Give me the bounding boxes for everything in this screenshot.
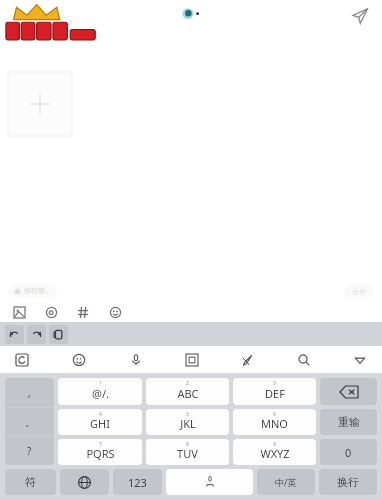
button[interactable]: Space xyxy=(166,469,253,495)
button[interactable]: Undo xyxy=(5,325,24,344)
staticText: 中/英 xyxy=(275,476,297,488)
staticText: , xyxy=(28,386,31,400)
button[interactable]: 1 xyxy=(58,378,142,405)
staticText: 重输 xyxy=(338,415,360,429)
staticText: 5 xyxy=(186,411,189,418)
button[interactable]: Handwriting xyxy=(236,348,260,372)
staticText: GHI xyxy=(90,416,110,431)
staticText: 3 xyxy=(273,380,276,387)
button[interactable]: 换行 xyxy=(319,469,377,495)
staticText: 公开 xyxy=(352,287,366,296)
button[interactable]: 6 xyxy=(233,409,316,435)
staticText: DEF xyxy=(265,386,285,401)
button[interactable]: 公开 xyxy=(344,284,374,299)
staticText: 0 xyxy=(345,445,352,460)
staticText: 123 xyxy=(128,475,147,490)
button[interactable]: Add photo xyxy=(8,72,72,136)
button[interactable]: ? xyxy=(5,437,54,465)
button[interactable]: Emoji xyxy=(67,348,91,372)
button[interactable]: 7 xyxy=(58,439,142,465)
staticText: JKL xyxy=(180,416,196,431)
button[interactable]: Voice input xyxy=(124,348,148,372)
button[interactable]: Search xyxy=(292,348,316,372)
button[interactable]: Send xyxy=(348,4,372,28)
staticText: 9 xyxy=(273,441,276,448)
button[interactable]: Collapse xyxy=(348,348,372,372)
staticText: 。 xyxy=(25,416,35,429)
button[interactable]: 8 xyxy=(146,439,229,465)
button[interactable]: 你在哪… xyxy=(8,284,57,298)
button[interactable]: Insert image xyxy=(10,303,28,321)
button[interactable]: Keyboard layout xyxy=(180,348,204,372)
staticText: MNO xyxy=(261,416,288,431)
button[interactable]: 中/英 xyxy=(257,469,315,495)
staticText: 换行 xyxy=(337,475,359,489)
button[interactable]: Topic xyxy=(74,303,92,321)
staticText: 7 xyxy=(99,441,102,448)
button[interactable]: 重输 xyxy=(320,409,377,435)
button[interactable]: 123 xyxy=(113,469,162,495)
button[interactable]: 0 xyxy=(320,439,377,465)
staticText: TUV xyxy=(177,446,198,461)
staticText: 符 xyxy=(25,475,36,489)
button[interactable]: Redo xyxy=(27,325,46,344)
button[interactable]: 4 xyxy=(58,409,142,435)
button[interactable]: Backspace xyxy=(320,378,377,405)
button[interactable]: 。 xyxy=(5,408,54,436)
button[interactable]: Mention xyxy=(42,303,60,321)
staticText: ABC xyxy=(177,386,199,401)
staticText: 2 xyxy=(186,380,189,387)
staticText: WXYZ xyxy=(260,446,290,461)
staticText: 你在哪… xyxy=(24,286,51,296)
button[interactable]: 2 xyxy=(146,378,229,405)
button[interactable]: 符 xyxy=(5,469,56,495)
button[interactable]: 9 xyxy=(233,439,316,465)
button[interactable]: , xyxy=(5,378,54,407)
staticText: @/. xyxy=(92,386,109,401)
button[interactable]: 5 xyxy=(146,409,229,435)
staticText: 4 xyxy=(99,411,102,418)
staticText: 6 xyxy=(273,411,276,418)
staticText: 1 xyxy=(99,380,102,387)
button[interactable]: Paste xyxy=(49,325,68,344)
staticText: PQRS xyxy=(86,446,115,461)
button[interactable]: 3 xyxy=(233,378,316,405)
staticText: 8 xyxy=(186,441,189,448)
button[interactable]: Sogou xyxy=(10,348,34,372)
staticText: ? xyxy=(27,444,32,458)
button[interactable]: Emoji xyxy=(106,303,124,321)
button[interactable]: Language xyxy=(60,469,109,495)
